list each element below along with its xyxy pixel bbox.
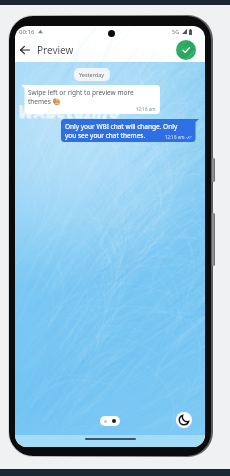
staticText: 12:16 am <box>136 106 156 112</box>
button[interactable]: Back <box>17 42 32 57</box>
staticText: Only your WBI chat will change. Only <box>65 122 178 131</box>
staticText: 5G <box>172 28 180 35</box>
staticText: Yesterday <box>79 71 105 78</box>
button[interactable]: Dark mode <box>176 412 192 428</box>
staticText: 12:16 am <box>165 134 185 140</box>
staticText: WABetaInfo <box>18 100 120 123</box>
button[interactable]: Confirm <box>176 40 196 60</box>
staticText: WABetaInfo <box>19 101 121 124</box>
staticText: 00:16 <box>19 28 35 36</box>
staticText: Swipe left or right to preview more them… <box>28 88 156 106</box>
staticText: you see your chat themes. <box>65 131 146 140</box>
button[interactable]: Page indicator <box>100 416 120 426</box>
staticText: Preview <box>37 43 74 57</box>
